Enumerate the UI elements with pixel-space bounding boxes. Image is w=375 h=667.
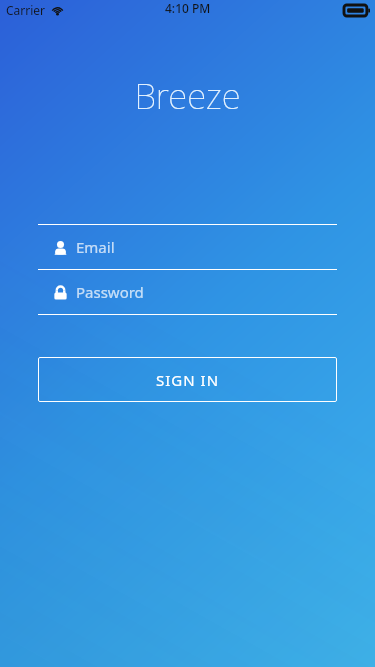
staticText: Carrier <box>6 2 46 18</box>
staticText: Breeze <box>134 72 241 120</box>
button[interactable]: Password <box>38 270 337 314</box>
staticText: Email <box>76 237 115 257</box>
staticText: SIGN IN <box>156 370 220 390</box>
button[interactable]: Email <box>38 225 337 269</box>
button[interactable]: SIGN IN <box>38 357 337 402</box>
staticText: 4:10 PM <box>165 0 211 16</box>
staticText: Password <box>76 282 144 302</box>
